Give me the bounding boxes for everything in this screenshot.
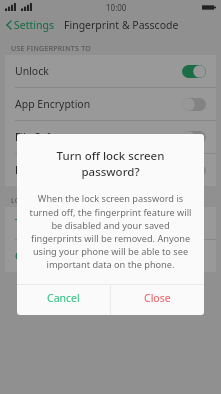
button[interactable]: Cancel: [17, 285, 110, 311]
staticText: USE FINGERPRINTS TO: [11, 44, 92, 54]
staticText: App Encryption: [15, 97, 91, 111]
staticText: LOCKSCREEN PASSCODE: [11, 196, 97, 206]
staticText: Cancel: [47, 291, 80, 305]
staticText: Turn off Passcode: [15, 216, 103, 230]
staticText: 10:00: [106, 2, 127, 13]
button[interactable]: Change Passcode: [5, 240, 216, 272]
staticText: Unlock: [15, 64, 49, 78]
button[interactable]: Back to Settings: [0, 15, 60, 35]
staticText: Private Safe: [15, 163, 74, 177]
button[interactable]: Turn off Passcode: [5, 207, 216, 239]
button[interactable]: Private Safe: [5, 154, 216, 186]
staticText: Settings: [14, 18, 54, 32]
staticText: File Safe: [15, 130, 56, 144]
staticText: When the lock screen password is turned …: [26, 192, 195, 270]
staticText: Change Passcode: [15, 249, 102, 263]
staticText: Turn off lock screen password?: [27, 148, 194, 180]
button[interactable]: App Encryption: [5, 88, 216, 120]
button[interactable]: File Safe: [5, 121, 216, 153]
staticText: Fingerprint & Passcode: [64, 18, 179, 32]
button[interactable]: Close: [111, 285, 204, 311]
button[interactable]: Unlock: [5, 55, 216, 87]
staticText: Close: [144, 291, 171, 305]
